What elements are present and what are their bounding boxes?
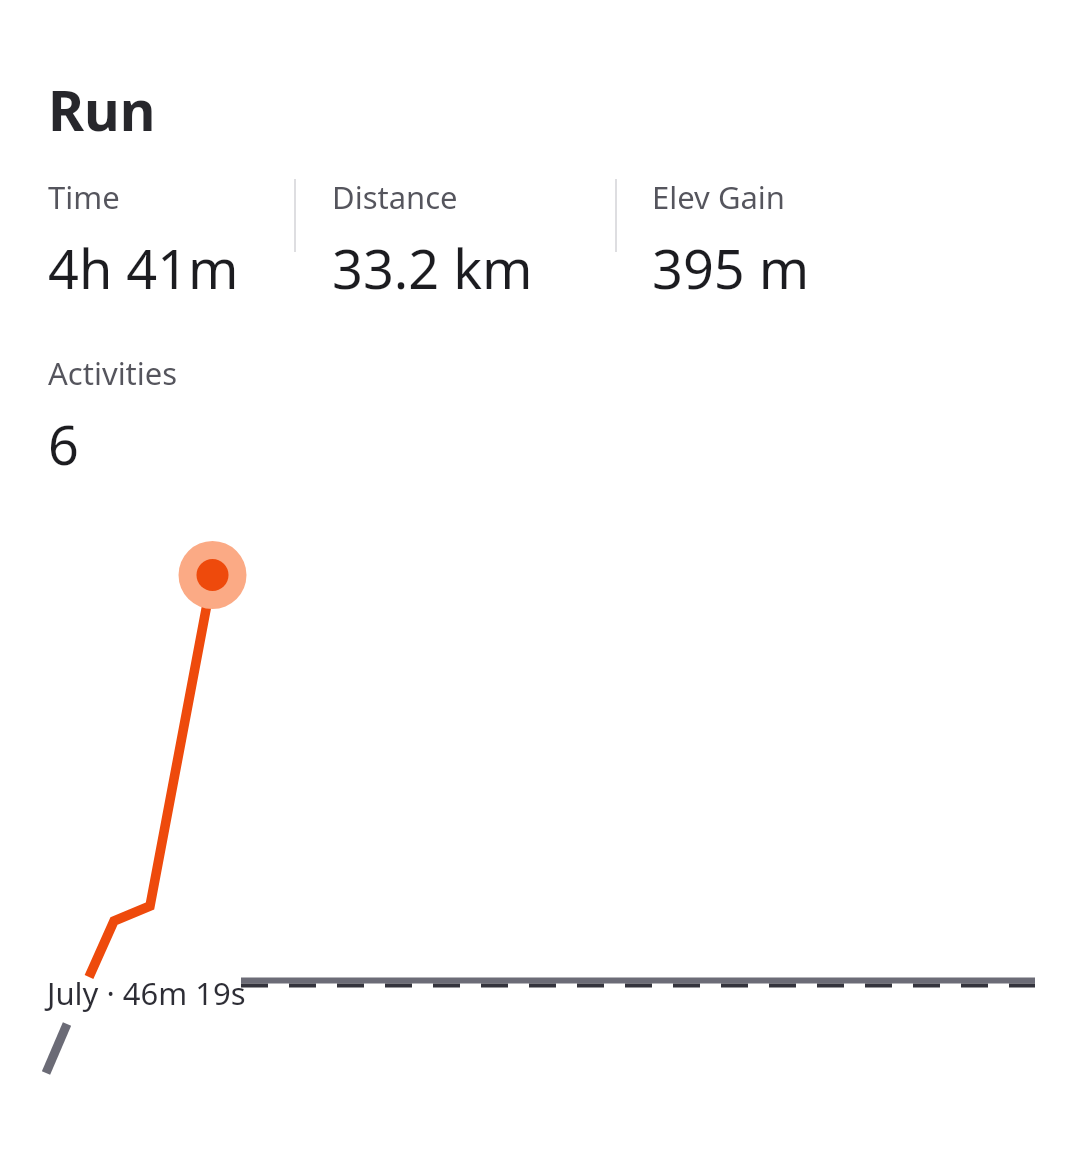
button[interactable]: Run xyxy=(48,72,156,147)
staticText: 6 xyxy=(48,407,79,481)
staticText: Run xyxy=(48,72,156,147)
staticText: 4h 41m xyxy=(48,231,239,305)
staticText: 33.2 km xyxy=(332,231,533,305)
staticText: Distance xyxy=(332,176,458,218)
staticText: July · 46m 19s xyxy=(47,972,246,1014)
button[interactable]: Distance xyxy=(332,176,615,305)
staticText: Time xyxy=(48,176,120,218)
button[interactable]: Time xyxy=(48,176,294,305)
other: Monthly run trend chart xyxy=(0,0,1079,1151)
staticText: 395 m xyxy=(652,231,810,305)
button[interactable]: July · 46m 19s xyxy=(47,972,246,1014)
button[interactable]: Elev Gain xyxy=(652,176,810,305)
staticText: Activities xyxy=(48,352,178,394)
staticText: Elev Gain xyxy=(652,176,786,218)
button[interactable]: Activities xyxy=(48,352,178,481)
